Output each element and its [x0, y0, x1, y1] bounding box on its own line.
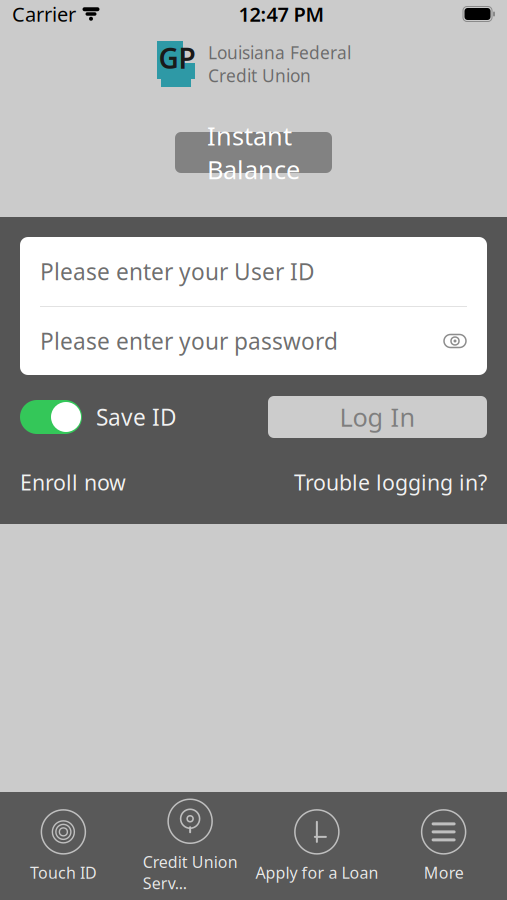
button[interactable]: More	[380, 801, 507, 891]
staticText: Touch ID	[30, 862, 97, 883]
staticText: Log In	[339, 400, 415, 434]
staticText: Please enter your password	[40, 326, 338, 356]
button[interactable]: Instant Balance	[175, 132, 332, 173]
staticText: More	[424, 862, 464, 883]
button[interactable]: Please enter your password	[20, 307, 487, 375]
button[interactable]: Credit Union Serv...	[127, 801, 254, 891]
button[interactable]: Trouble logging in?	[294, 468, 487, 496]
button[interactable]: Enroll now	[20, 468, 126, 496]
staticText: Enroll now	[20, 468, 126, 496]
staticText: Trouble logging in?	[294, 468, 487, 496]
staticText: Instant Balance	[207, 119, 300, 186]
button[interactable]: Apply for a Loan	[253, 801, 380, 891]
staticText: Apply for a Loan	[255, 862, 378, 883]
staticText: GP	[158, 39, 195, 77]
button[interactable]: Save ID	[20, 400, 177, 434]
staticText: Carrier	[12, 1, 76, 27]
staticText: Louisiana Federal	[208, 41, 351, 64]
staticText: Please enter your User ID	[40, 256, 315, 286]
staticText: Save ID	[96, 402, 177, 432]
staticText: Credit Union Serv...	[143, 851, 238, 894]
button[interactable]: Please enter your User ID	[20, 237, 487, 306]
button[interactable]: Touch ID	[0, 801, 127, 891]
button[interactable]: Log In	[268, 396, 487, 438]
staticText: Credit Union	[208, 64, 311, 87]
staticText: 12:47 PM	[238, 1, 324, 27]
